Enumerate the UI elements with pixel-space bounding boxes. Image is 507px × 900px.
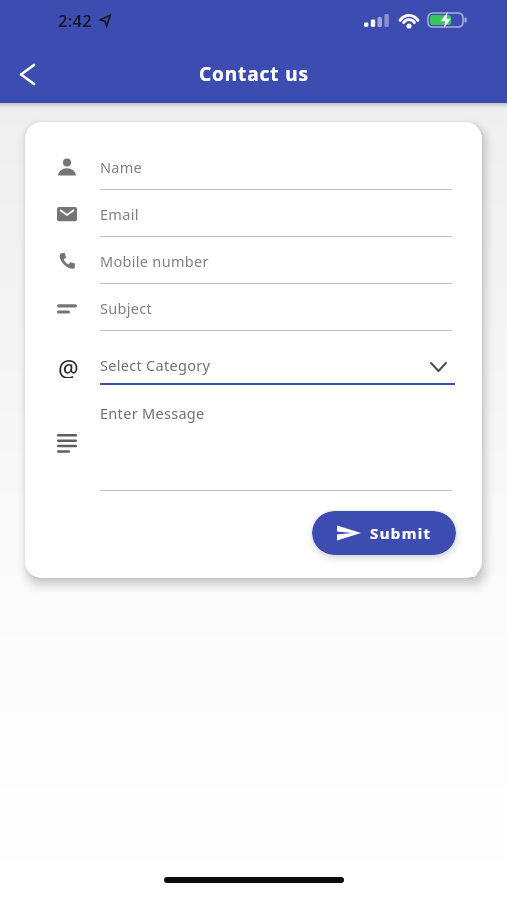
staticText: Select Category [100, 355, 211, 375]
button[interactable] [9, 56, 45, 92]
staticText: Contact us [199, 61, 309, 87]
staticText: Name [100, 157, 143, 177]
button[interactable]: Enter Message [25, 385, 482, 491]
staticText: Submit [370, 523, 432, 543]
button[interactable]: @ [25, 331, 482, 385]
button[interactable]: Email [25, 190, 482, 237]
staticText: 2:42 [58, 9, 93, 31]
staticText: Subject [100, 298, 153, 318]
button[interactable]: Mobile number [25, 237, 482, 284]
button[interactable]: Subject [25, 284, 482, 331]
staticText: @ [58, 352, 79, 378]
staticText: Mobile number [100, 251, 209, 271]
button[interactable]: Name [25, 143, 482, 190]
staticText: Email [100, 204, 139, 224]
button[interactable]: Submit [312, 511, 456, 555]
staticText: Enter Message [100, 403, 205, 423]
